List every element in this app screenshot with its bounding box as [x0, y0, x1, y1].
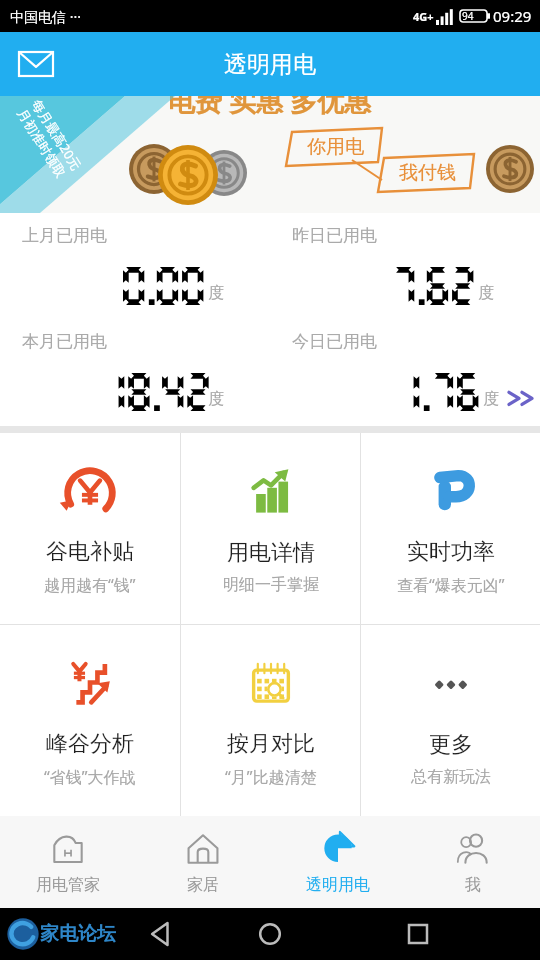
staticText: 按月对比 — [227, 730, 315, 758]
button[interactable]: Messages — [14, 42, 58, 86]
button[interactable]: 用电详情 — [181, 433, 360, 624]
staticText: 度 — [208, 389, 224, 409]
button[interactable]: 本月已用电 — [0, 319, 270, 425]
staticText: 我 — [465, 875, 481, 895]
button[interactable]: 谷电补贴 — [0, 433, 180, 624]
staticText: “省钱”大作战 — [44, 766, 136, 788]
button[interactable]: 用电管家 — [0, 816, 135, 908]
staticText: 94 — [462, 9, 474, 23]
staticText: 度 — [478, 283, 494, 303]
staticText: 每月最高20元 — [28, 96, 86, 173]
staticText: 家居 — [187, 875, 219, 895]
button[interactable]: Recents — [396, 912, 440, 956]
staticText: 上月已用电 — [22, 225, 107, 246]
staticText: 4G+ — [413, 9, 434, 24]
button[interactable]: 更多 — [361, 625, 540, 816]
button[interactable]: Home — [248, 912, 292, 956]
staticText: 度 — [208, 283, 224, 303]
staticText: 查看“爆表元凶” — [397, 574, 505, 596]
staticText: 越用越有“钱” — [44, 574, 136, 596]
staticText: 峰谷分析 — [46, 730, 134, 758]
button[interactable]: 上月已用电 — [0, 213, 270, 319]
button[interactable]: 我 — [405, 816, 540, 908]
staticText: 度 — [483, 389, 499, 409]
staticText: 你用电 — [307, 135, 364, 159]
staticText: 用电详情 — [227, 539, 315, 567]
staticText: 我付钱 — [399, 161, 456, 185]
button[interactable]: 家居 — [135, 816, 270, 908]
staticText: 明细一手掌握 — [223, 575, 319, 595]
staticText: 电费 实惠 多优惠 — [168, 96, 372, 119]
staticText: 中国电信 ··· — [10, 7, 81, 26]
staticText: 09:29 — [493, 6, 532, 26]
button[interactable]: 实时功率 — [361, 433, 540, 624]
staticText: 实时功率 — [407, 538, 495, 566]
button[interactable]: 今日已用电 — [270, 319, 540, 425]
staticText: 今日已用电 — [292, 331, 377, 352]
staticText: 谷电补贴 — [46, 538, 134, 566]
staticText: 透明用电 — [224, 50, 316, 79]
staticText: 更多 — [429, 731, 473, 759]
button[interactable]: Back — [140, 912, 184, 956]
staticText: 透明用电 — [306, 875, 370, 895]
button[interactable]: 峰谷分析 — [0, 625, 180, 816]
button[interactable]: 昨日已用电 — [270, 213, 540, 319]
button[interactable]: 透明用电 — [270, 816, 405, 908]
staticText: 总有新玩法 — [411, 767, 491, 787]
staticText: 月初准时领取 — [14, 106, 69, 180]
staticText: 用电管家 — [36, 875, 100, 895]
staticText: “月”比越清楚 — [225, 766, 317, 788]
staticText: 昨日已用电 — [292, 225, 377, 246]
staticText: 本月已用电 — [22, 331, 107, 352]
button[interactable]: 电费 实惠 多优惠 — [0, 96, 540, 213]
button[interactable]: 按月对比 — [181, 625, 360, 816]
staticText: 家电论坛 — [40, 922, 116, 946]
